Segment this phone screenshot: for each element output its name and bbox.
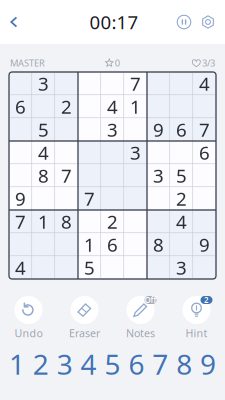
- button[interactable]: Settings: [196, 0, 220, 44]
- staticText: 1: [84, 232, 95, 257]
- staticText: 6: [15, 94, 26, 119]
- staticText: 9: [15, 186, 26, 211]
- button[interactable]: 4: [77, 349, 100, 379]
- staticText: 8: [153, 232, 164, 257]
- staticText: 4: [15, 255, 26, 280]
- staticText: 0: [115, 57, 120, 69]
- staticText: Off: [144, 295, 156, 305]
- staticText: 5: [38, 117, 49, 142]
- staticText: 9: [153, 117, 164, 142]
- staticText: 5: [84, 255, 95, 280]
- staticText: 8: [61, 209, 72, 234]
- button[interactable]: 7: [148, 349, 172, 379]
- staticText: 5: [104, 345, 120, 383]
- staticText: 4: [199, 71, 210, 96]
- button[interactable]: 9: [196, 349, 220, 379]
- staticText: 3: [38, 71, 49, 96]
- staticText: 7: [152, 345, 168, 383]
- staticText: 7: [130, 71, 141, 96]
- staticText: 9: [199, 232, 210, 257]
- staticText: 3: [107, 117, 118, 142]
- staticText: 6: [107, 232, 118, 257]
- button[interactable]: 1: [5, 349, 29, 379]
- staticText: Eraser: [69, 326, 100, 340]
- staticText: 2: [204, 295, 209, 305]
- staticText: 3/3: [202, 57, 215, 69]
- button[interactable]: 2: [29, 349, 53, 379]
- button[interactable]: Pause: [172, 0, 196, 44]
- button[interactable]: 2: [168, 296, 224, 338]
- staticText: 8: [38, 163, 49, 188]
- button[interactable]: Back: [0, 0, 28, 44]
- staticText: 7: [199, 117, 210, 142]
- button[interactable]: Off: [112, 296, 168, 338]
- staticText: 3: [153, 163, 164, 188]
- staticText: 6: [199, 140, 210, 165]
- staticText: 9: [200, 345, 216, 383]
- button[interactable]: Undo: [0, 296, 56, 338]
- staticText: 2: [176, 186, 187, 211]
- staticText: 4: [107, 94, 118, 119]
- button[interactable]: 5: [100, 349, 124, 379]
- staticText: 1: [38, 209, 49, 234]
- button[interactable]: 3: [53, 349, 77, 379]
- staticText: Notes: [126, 326, 155, 340]
- staticText: 1: [130, 94, 141, 119]
- staticText: 5: [176, 163, 187, 188]
- staticText: Undo: [14, 326, 42, 340]
- staticText: Hint: [185, 326, 207, 340]
- button[interactable]: 8: [172, 349, 196, 379]
- staticText: 7: [61, 163, 72, 188]
- staticText: 4: [38, 140, 49, 165]
- staticText: 6: [128, 345, 144, 383]
- button[interactable]: Eraser: [56, 296, 112, 338]
- staticText: 3: [57, 345, 73, 383]
- staticText: 2: [61, 94, 72, 119]
- staticText: MASTER: [10, 57, 45, 69]
- staticText: 00:17: [89, 10, 138, 34]
- staticText: 3: [176, 255, 187, 280]
- staticText: 7: [15, 209, 26, 234]
- button[interactable]: 6: [124, 349, 148, 379]
- staticText: 7: [84, 186, 95, 211]
- staticText: 4: [81, 345, 97, 383]
- staticText: 1: [9, 345, 25, 383]
- staticText: 3: [130, 140, 141, 165]
- staticText: 2: [107, 209, 118, 234]
- staticText: 4: [176, 209, 187, 234]
- staticText: 6: [176, 117, 187, 142]
- staticText: 8: [176, 345, 192, 383]
- staticText: 2: [33, 345, 49, 383]
